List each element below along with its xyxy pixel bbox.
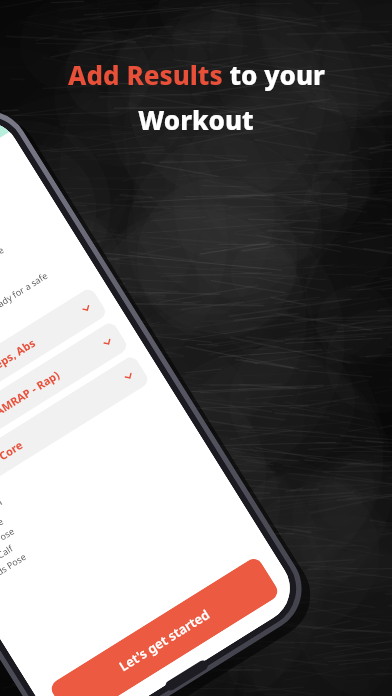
staticText: -Static Calf [0, 542, 15, 576]
staticText: Workout [138, 102, 254, 137]
staticText: This steady build-up gets your body read… [0, 269, 50, 395]
button[interactable]: Death by Wheel (AMRAP - Rap) [0, 320, 129, 481]
staticText: -Childs Pose [0, 550, 28, 587]
staticText: -Pigeon Pose [0, 524, 16, 564]
button[interactable]: Legs, Glutes, Core [0, 354, 151, 515]
staticText: Chest, Shoulders, Triceps, Abs [0, 305, 86, 434]
staticText: Cool down [0, 492, 5, 538]
staticText: Let's get started [116, 605, 213, 675]
button[interactable]: Chest, Shoulders, Triceps, Abs [0, 286, 108, 447]
staticText: such as leg swings and arm circles, to i… [0, 243, 6, 357]
staticText: -Lizard Pose [0, 515, 5, 552]
button[interactable]: Let's get started [48, 555, 281, 696]
staticText: Add Results to your [68, 57, 325, 92]
staticText: Death by Wheel (AMRAP - Rap) [0, 339, 107, 468]
button[interactable]: Workout plan app screen preview [0, 94, 318, 696]
staticText: Legs, Glutes, Core [0, 373, 128, 502]
